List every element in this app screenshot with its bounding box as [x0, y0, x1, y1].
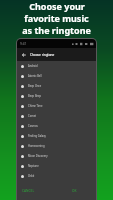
staticText: Finding Galaxy [28, 134, 46, 138]
button[interactable]: Android [17, 61, 96, 71]
button[interactable]: Beep Once [17, 81, 96, 91]
staticText: Neptune [28, 164, 39, 168]
staticText: Android [28, 64, 38, 68]
staticText: Beep Once [28, 84, 42, 88]
button[interactable]: Beep Beep [17, 91, 96, 101]
staticText: Comet [28, 114, 37, 118]
staticText: Atomic Bell [28, 74, 42, 78]
staticText: favorite music [24, 12, 89, 24]
staticText: 9:41 [20, 42, 27, 46]
button[interactable]: Orbit [17, 171, 96, 181]
staticText: Choose your [29, 0, 85, 12]
staticText: Choose ringtone [30, 53, 55, 57]
button[interactable]: Atomic Bell [17, 71, 96, 81]
button[interactable]: Comet [17, 111, 96, 121]
button[interactable]: Back [20, 51, 27, 58]
staticText: Cosmos [28, 124, 38, 128]
button[interactable]: OK [72, 189, 77, 193]
button[interactable]: Neptune [17, 161, 96, 171]
staticText: Orbit [28, 174, 35, 178]
button[interactable]: Cosmos [17, 121, 96, 131]
button[interactable]: CANCEL [22, 189, 35, 193]
staticText: as the ringtone [22, 24, 91, 36]
staticText: Beep Beep [28, 94, 42, 98]
staticText: Chime Time [28, 104, 43, 108]
staticText: Homecoming [28, 144, 45, 148]
button[interactable]: Homecoming [17, 141, 96, 151]
button[interactable]: Moon Discovery [17, 151, 96, 161]
staticText: Moon Discovery [28, 154, 48, 158]
button[interactable]: Chime Time [17, 101, 96, 111]
button[interactable]: Finding Galaxy [17, 131, 96, 141]
